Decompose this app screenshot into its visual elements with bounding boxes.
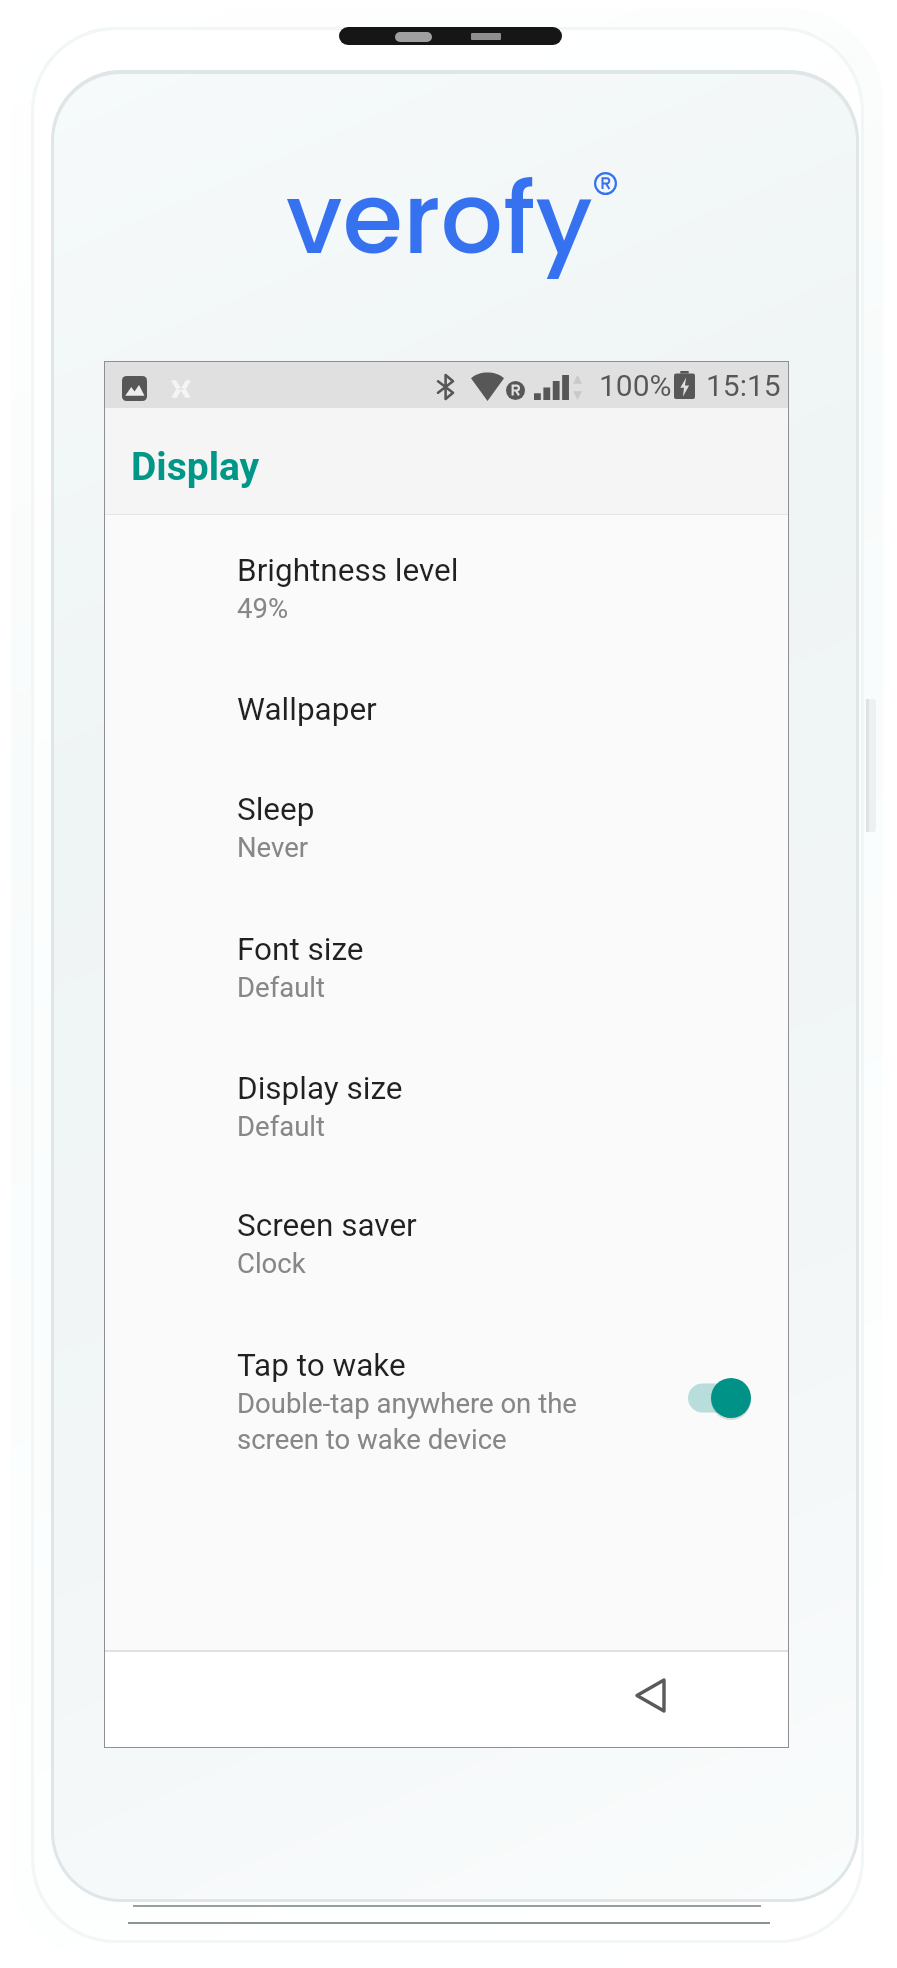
staticText: Sleep [237,791,315,828]
button[interactable]: Display size [105,1042,788,1180]
staticText: Tap to wake [237,1347,406,1384]
staticText: 15:15 [706,368,781,403]
staticText: 100% [599,368,672,403]
staticText: verofy [286,150,593,287]
staticText: Clock [237,1247,306,1279]
button[interactable]: Tap to wake [105,1319,788,1494]
staticText: Display size [237,1070,403,1107]
staticText: Screen saver [237,1207,417,1244]
button[interactable]: Screen saver [105,1179,788,1317]
staticText: Font size [237,931,364,968]
staticText: Display [131,444,260,490]
button[interactable]: Wallpaper [105,663,788,763]
staticText: Default [237,971,325,1003]
button[interactable]: Back [610,1655,690,1735]
button[interactable]: Sleep [105,763,788,901]
button[interactable]: Tap to wake toggle [680,1368,770,1428]
button[interactable]: Font size [105,903,788,1041]
staticText: 49% [237,592,289,624]
staticText: Double-tap anywhere on the screen to wak… [237,1387,577,1456]
staticText: Never [237,831,309,863]
staticText: Wallpaper [237,691,377,728]
staticText: Default [237,1110,325,1142]
staticText: Brightness level [237,552,459,589]
button[interactable]: Brightness level [105,524,788,662]
